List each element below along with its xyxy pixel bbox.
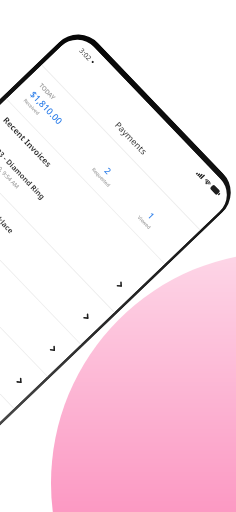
button[interactable]: #00021 - Gold Bracelet	[0, 179, 81, 377]
staticText: Mar 12, 2020, 9:54 AM	[0, 142, 21, 190]
staticText: Payments	[112, 119, 150, 157]
staticText: 2	[102, 165, 114, 177]
staticText: 1	[145, 210, 157, 222]
staticText: #00023 - Diamond Ring	[0, 134, 48, 202]
staticText: 3:02	[77, 46, 94, 63]
staticText: Recent Invoices	[1, 115, 54, 170]
button[interactable]: #00022 - Pearl Necklace	[0, 147, 114, 345]
staticText: TODAY	[37, 81, 57, 102]
staticText: #00022 - Pearl Necklace	[0, 166, 16, 236]
button[interactable]: #00019 - Ruby Earrings	[0, 244, 14, 441]
staticText: Requested	[90, 166, 112, 188]
button[interactable]: #00023 - Diamond Ring	[0, 115, 147, 313]
staticText: Received	[22, 97, 41, 116]
staticText: Viewed	[136, 214, 153, 231]
button[interactable]: Payments	[42, 46, 220, 230]
button[interactable]: #00020 - Silver Chain	[0, 212, 47, 409]
staticText: $1,810.00	[27, 88, 65, 127]
